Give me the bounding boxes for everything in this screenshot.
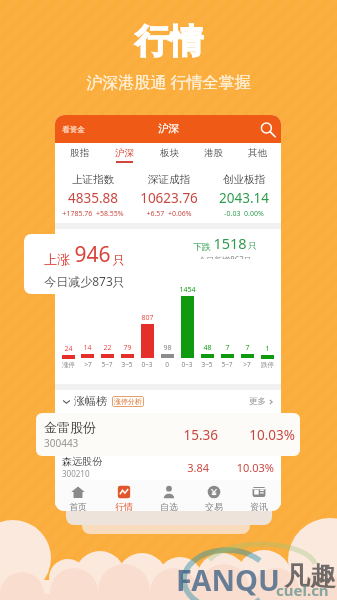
staticText: cuel.cn [276,580,329,600]
button[interactable]: Search [258,120,276,138]
button[interactable]: 行情 [101,480,146,511]
staticText: 300443 [44,436,79,450]
staticText: 深证成指 [148,173,190,186]
staticText: 4835.88 [68,189,118,207]
button[interactable]: 涨停分析 [112,396,144,407]
staticText: 5~7 [221,360,233,369]
staticText: 10.03% [227,426,295,444]
staticText: 更多 [249,396,266,407]
button[interactable]: 股指 [57,143,102,167]
staticText: 涨幅榜 [74,394,107,408]
staticText: 48 [203,343,212,353]
button[interactable]: 79 [117,343,137,369]
button[interactable]: 自选 [146,480,191,511]
staticText: 板块 [160,147,179,159]
staticText: 上涨 [44,251,70,267]
staticText: 22 [103,343,112,353]
button[interactable]: 森远股份 [55,455,281,479]
staticText: 只 [248,241,257,252]
staticText: 3~5 [121,360,133,369]
button[interactable]: 首页 [55,480,101,511]
staticText: >7 [84,360,92,369]
button[interactable]: 1 [257,344,277,369]
staticText: 金雷股份 [44,419,96,435]
button[interactable]: 涨幅榜 [62,394,107,408]
staticText: 5~7 [101,360,113,369]
button[interactable]: 上涨 [24,234,145,294]
button[interactable]: 深证成指 [131,167,206,223]
button[interactable]: 港股 [191,143,235,167]
staticText: 今日减少873只 [44,273,125,289]
staticText: 涨停 [62,361,75,369]
staticText: 森远股份 [62,455,102,468]
staticText: 行情 [135,20,203,63]
staticText: 港股 [204,147,223,159]
staticText: 沪深港股通 行情全掌握 [86,71,251,93]
button[interactable]: 22 [97,343,117,369]
staticText: 300210 [62,468,90,479]
staticText: +1785.76 +58.55% [62,209,124,219]
staticText: 只 [113,252,125,267]
staticText: 1518 [213,233,247,253]
staticText: 沪深 [158,122,179,135]
staticText: 2043.14 [219,189,269,207]
button[interactable]: 7 [217,343,237,369]
button[interactable]: 98 [157,343,177,369]
button[interactable]: 金雷股份 [36,413,300,456]
staticText: FANQU [176,560,280,599]
button[interactable]: 板块 [147,143,191,167]
staticText: 涨停分析 [114,397,142,406]
staticText: 行情 [115,501,133,511]
staticText: 股指 [70,147,89,159]
staticText: 24 [64,344,73,354]
staticText: 14 [83,343,92,353]
button[interactable]: 7 [237,343,257,369]
staticText: 资讯 [250,501,268,511]
staticText: 807 [141,313,154,323]
staticText: 其他 [248,147,267,159]
staticText: 沪深 [115,147,134,159]
button[interactable]: 24 [59,344,78,369]
staticText: 7 [225,343,230,353]
button[interactable]: 更多 [249,396,274,407]
button[interactable]: 交易 [191,480,236,511]
staticText: 跌停 [261,361,274,369]
button[interactable]: 其他 [235,143,279,167]
staticText: 0 [165,360,169,369]
staticText: 3~5 [201,360,213,369]
staticText: 创业板指 [223,173,265,186]
staticText: 交易 [205,501,223,511]
staticText: 1 [265,344,270,354]
staticText: 下跌 [193,241,211,252]
staticText: 10.03% [215,460,274,475]
button[interactable]: 上证指数 [55,167,131,223]
staticText: -0.03 0.00% [224,209,264,219]
staticText: 15.36 [150,426,218,444]
button[interactable]: 48 [197,343,217,369]
staticText: 0~3 [141,360,153,369]
staticText: 0~3 [181,360,193,369]
staticText: +6.57 +0.06% [146,209,192,219]
button[interactable]: 1454 [177,285,197,369]
staticText: 7 [245,343,250,353]
staticText: >7 [243,360,251,369]
staticText: 79 [123,343,132,353]
button[interactable]: 看资金 [62,125,85,134]
staticText: 首页 [69,501,87,511]
staticText: 自选 [160,501,178,511]
button[interactable]: 资讯 [236,480,281,511]
button[interactable]: 沪深 [102,143,147,167]
staticText: 1454 [179,285,196,295]
staticText: 10623.76 [140,189,198,207]
button[interactable]: 14 [78,343,97,369]
staticText: 3.84 [150,460,209,475]
staticText: 上证指数 [72,173,114,186]
staticText: 98 [163,343,172,353]
staticText: 946 [74,240,111,269]
button[interactable]: 创业板指 [206,167,281,223]
staticText: 今日新增863只 [198,254,252,259]
button[interactable]: 807 [137,313,157,369]
staticText: 凡趣 [284,560,336,593]
